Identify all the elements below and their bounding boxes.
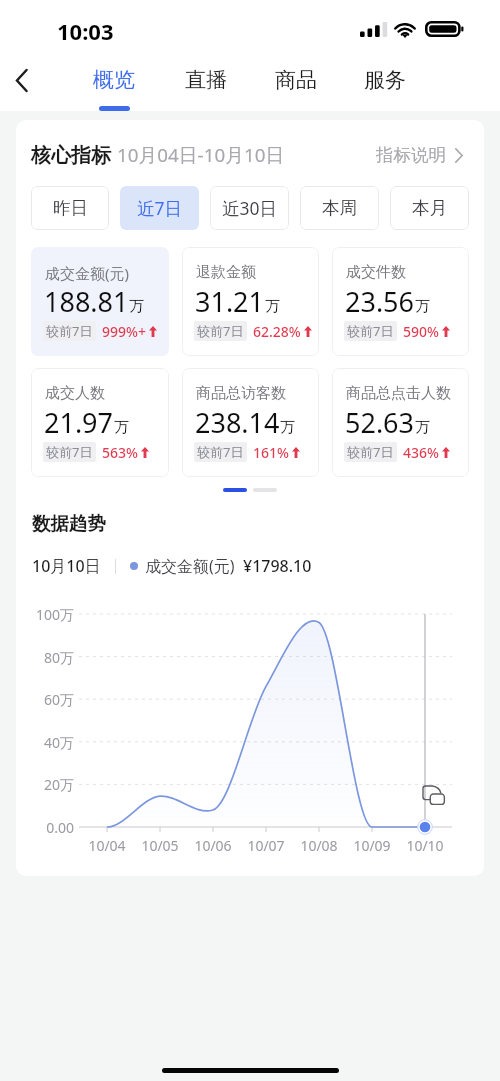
staticText: 成交金额(元) xyxy=(45,263,130,283)
staticText: 10:03 xyxy=(57,16,114,46)
staticText: 20万 xyxy=(43,775,74,794)
staticText: 较前7日 xyxy=(197,443,244,461)
staticText: 10/08 xyxy=(300,836,338,855)
staticText: 10月10日 xyxy=(32,555,101,577)
staticText: 退款金额 xyxy=(196,263,256,282)
staticText: 服务 xyxy=(364,67,406,93)
staticText: 563% xyxy=(102,443,138,462)
staticText: 590% xyxy=(403,322,439,341)
staticText: 核心指标 xyxy=(31,143,111,168)
button[interactable]: 商品总访客数 xyxy=(182,368,319,477)
staticText: 238.14 xyxy=(195,404,280,441)
button[interactable]: 概览 xyxy=(82,58,146,111)
staticText: 商品 xyxy=(275,67,317,93)
staticText: 436% xyxy=(403,443,439,462)
staticText: 100万 xyxy=(35,605,74,624)
staticText: ¥1798.10 xyxy=(243,555,312,577)
staticText: 999%+ xyxy=(102,322,146,341)
staticText: 10/06 xyxy=(194,836,232,855)
staticText: 较前7日 xyxy=(197,322,244,340)
staticText: 10/07 xyxy=(247,836,285,855)
staticText: 成交件数 xyxy=(346,263,406,282)
staticText: 较前7日 xyxy=(347,322,394,340)
button[interactable]: 成交金额(元) xyxy=(31,247,169,356)
staticText: 指标说明 xyxy=(376,144,446,166)
staticText: 近7日 xyxy=(137,196,183,220)
staticText: 31.21 xyxy=(195,283,265,320)
staticText: 23.56 xyxy=(345,283,415,320)
staticText: 80万 xyxy=(43,648,74,667)
staticText: 60万 xyxy=(43,690,74,709)
button[interactable]: Back xyxy=(2,60,42,100)
staticText: 直播 xyxy=(185,67,227,93)
staticText: 10/04 xyxy=(88,836,126,855)
staticText: 近30日 xyxy=(222,196,278,220)
staticText: 21.97 xyxy=(44,404,114,441)
staticText: 数据趋势 xyxy=(32,512,106,535)
staticText: 成交人数 xyxy=(45,384,105,403)
staticText: 商品总点击人数 xyxy=(346,384,451,403)
staticText: 成交金额(元) xyxy=(145,555,235,577)
staticText: 昨日 xyxy=(53,197,88,219)
button[interactable]: 商品总点击人数 xyxy=(332,368,469,477)
button[interactable]: Copy xyxy=(423,786,445,806)
button[interactable]: 近30日 xyxy=(210,186,289,230)
button[interactable]: 成交人数 xyxy=(31,368,169,477)
staticText: 52.63 xyxy=(345,404,415,441)
staticText: 本周 xyxy=(322,197,357,219)
staticText: 40万 xyxy=(43,733,74,752)
staticText: 10/09 xyxy=(353,836,391,855)
staticText: 概览 xyxy=(93,67,135,93)
staticText: 万 xyxy=(415,418,430,437)
staticText: 万 xyxy=(129,297,144,316)
button[interactable]: 近7日 xyxy=(120,186,199,230)
button[interactable]: 指标说明 xyxy=(376,144,463,166)
staticText: 较前7日 xyxy=(46,443,93,461)
button[interactable]: 商品 xyxy=(264,58,328,111)
staticText: 10月04日-10月10日 xyxy=(117,142,285,168)
staticText: 万 xyxy=(114,418,129,437)
staticText: 10/05 xyxy=(141,836,179,855)
staticText: 万 xyxy=(280,418,295,437)
button[interactable]: 昨日 xyxy=(31,186,109,230)
button[interactable]: 服务 xyxy=(353,58,417,111)
staticText: 较前7日 xyxy=(46,322,93,340)
staticText: 万 xyxy=(415,297,430,316)
staticText: 本月 xyxy=(412,197,447,219)
staticText: 较前7日 xyxy=(347,443,394,461)
staticText: 10/10 xyxy=(406,836,444,855)
button[interactable]: 本月 xyxy=(390,186,469,230)
staticText: 161% xyxy=(253,443,289,462)
staticText: 188.81 xyxy=(44,283,129,320)
button[interactable]: 直播 xyxy=(174,58,238,111)
staticText: 万 xyxy=(265,297,280,316)
button[interactable]: 成交件数 xyxy=(332,247,469,356)
staticText: 商品总访客数 xyxy=(196,384,286,403)
staticText: 0.00 xyxy=(46,818,74,837)
staticText: 62.28% xyxy=(253,322,301,341)
button[interactable]: 本周 xyxy=(300,186,379,230)
button[interactable]: 退款金额 xyxy=(182,247,319,356)
